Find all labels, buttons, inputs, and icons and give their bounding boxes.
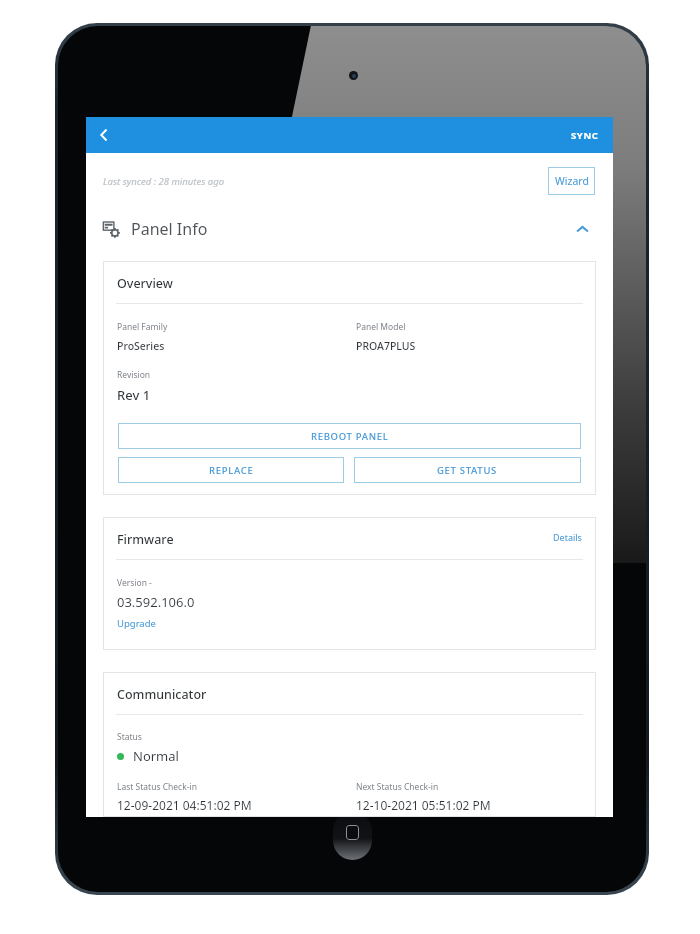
staticText: Panel Model <box>356 321 406 333</box>
staticText: Last Status Check-in <box>117 781 197 793</box>
button[interactable]: Upgrade <box>117 617 156 630</box>
staticText: Wizard <box>555 174 589 188</box>
button[interactable]: Details <box>553 531 582 543</box>
button[interactable]: REBOOT PANEL <box>118 423 581 449</box>
button[interactable]: SYNC <box>557 117 613 153</box>
staticText: Status <box>117 731 142 743</box>
staticText: REBOOT PANEL <box>311 430 389 443</box>
staticText: REPLACE <box>209 464 254 477</box>
staticText: 03.592.106.0 <box>117 593 195 611</box>
staticText: Normal <box>133 747 179 765</box>
staticText: Firmware <box>117 531 174 548</box>
staticText: Communicator <box>117 686 207 703</box>
button[interactable]: Panel Info <box>86 209 613 249</box>
staticText: Upgrade <box>117 617 156 630</box>
staticText: Details <box>553 531 582 543</box>
staticText: SYNC <box>571 129 599 142</box>
staticText: Next Status Check-in <box>356 781 439 793</box>
button[interactable]: GET STATUS <box>354 457 581 483</box>
button[interactable]: Home <box>333 812 372 860</box>
button[interactable]: REPLACE <box>118 457 344 483</box>
staticText: GET STATUS <box>437 464 498 477</box>
other: Collapse <box>565 212 599 246</box>
staticText: ProSeries <box>117 339 165 353</box>
staticText: PROA7PLUS <box>356 339 416 353</box>
staticText: Revision <box>117 369 151 381</box>
button[interactable]: Wizard <box>548 167 595 195</box>
staticText: Panel Family <box>117 321 168 333</box>
staticText: Last synced : 28 minutes ago <box>103 175 225 188</box>
staticText: 12-09-2021 04:51:02 PM <box>117 797 252 813</box>
staticText: Rev 1 <box>117 386 151 404</box>
staticText: Version - <box>117 577 152 589</box>
staticText: Overview <box>117 275 173 292</box>
button[interactable]: Back <box>86 117 122 153</box>
staticText: Panel Info <box>131 218 208 240</box>
staticText: 12-10-2021 05:51:02 PM <box>356 797 491 813</box>
